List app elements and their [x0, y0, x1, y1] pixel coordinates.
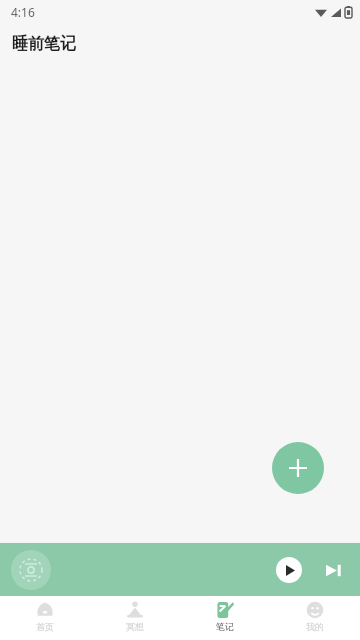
staticText: 首页: [36, 621, 54, 632]
staticText: 我的: [306, 621, 324, 632]
staticText: 冥想: [126, 621, 144, 632]
staticText: 4:16: [11, 4, 35, 20]
button[interactable]: 笔记: [180, 596, 270, 640]
button[interactable]: Play: [276, 557, 302, 583]
button[interactable]: 我的: [270, 596, 360, 640]
button[interactable]: 冥想: [90, 596, 180, 640]
staticText: 睡前笔记: [12, 34, 76, 54]
button[interactable]: Add note: [272, 442, 324, 494]
button[interactable]: Next: [320, 557, 346, 583]
button[interactable]: 首页: [0, 596, 90, 640]
staticText: 笔记: [216, 621, 234, 632]
button[interactable]: Play: [0, 543, 360, 596]
